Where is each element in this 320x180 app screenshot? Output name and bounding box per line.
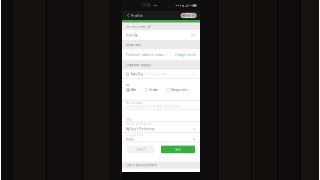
button[interactable]: India (122, 137, 200, 142)
staticText: Tell us more (126, 101, 143, 105)
staticText: MY DOG'S INFO (126, 25, 146, 28)
staticText: About Us (182, 14, 195, 17)
staticText: Female (149, 88, 158, 92)
staticText: Profile (131, 13, 143, 18)
button[interactable]: Cancel (127, 146, 154, 153)
staticText: India Tag (126, 34, 138, 37)
staticText: Save (175, 148, 181, 151)
staticText: Male (131, 88, 137, 92)
staticText: Baby Boy (131, 72, 143, 76)
button[interactable]: Change breed (175, 53, 196, 57)
staticText: Your country (126, 133, 143, 137)
staticText: My Dog's Preference (126, 127, 155, 131)
staticText: Title (126, 118, 132, 122)
button[interactable]: Save (161, 146, 195, 153)
staticText: Breed preference (126, 122, 152, 126)
staticText: Cancel (136, 148, 145, 151)
staticText: Transgender (171, 88, 188, 92)
staticText: Sex (126, 83, 129, 87)
staticText: Career announcement (126, 163, 157, 167)
button[interactable]: About Us (181, 13, 197, 18)
staticText: BREED INFO (126, 43, 141, 47)
button[interactable]: Male (127, 88, 137, 92)
staticText: India (126, 138, 133, 141)
button[interactable]: Transgender (166, 88, 188, 92)
button[interactable]: Edit (191, 34, 196, 37)
staticText: 11:09 (141, 4, 150, 7)
staticText: Placeholder text (145, 72, 167, 76)
staticText: Change breed (175, 53, 196, 57)
button[interactable]: Female (145, 88, 158, 92)
staticText: Edit (191, 34, 196, 37)
staticText: (?) (193, 72, 196, 76)
staticText: Lorem ipsum dolor sit amet consectetur (126, 105, 180, 108)
staticText: Purebred, mixed or unknown (126, 53, 167, 57)
button[interactable]: Profile (125, 11, 143, 20)
staticText: COMPANY DETAILS (126, 63, 150, 67)
button[interactable]: My Dog's Preference (122, 126, 200, 133)
